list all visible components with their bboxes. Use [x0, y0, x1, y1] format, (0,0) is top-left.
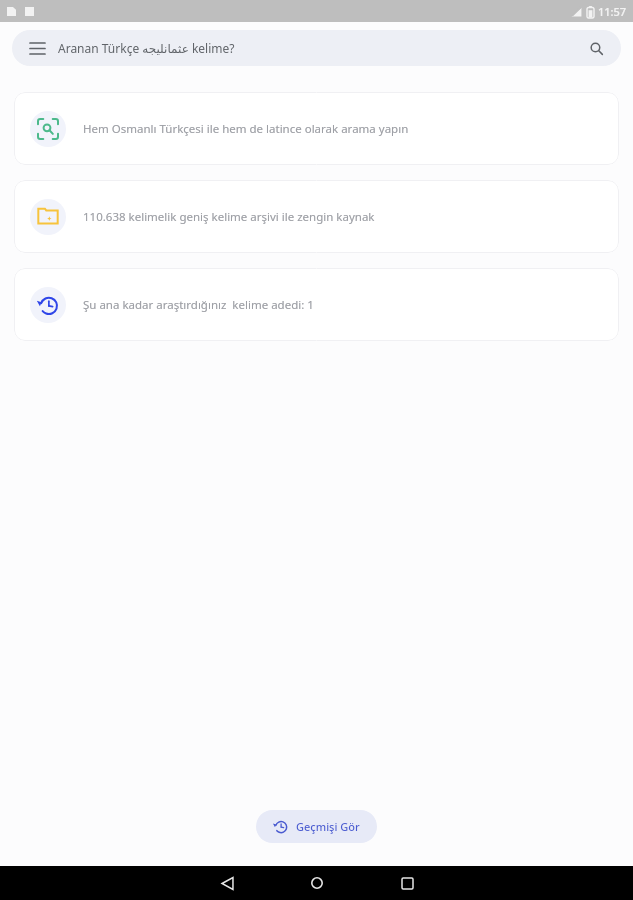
staticText: Şu ana kadar araştırdığınız kelime adedi…: [83, 297, 314, 313]
button[interactable]: Şu ana kadar araştırdığınız kelime adedi…: [14, 268, 619, 341]
button[interactable]: Geçmişi Gör: [256, 810, 377, 843]
button[interactable]: Menu: [12, 30, 621, 66]
staticText: 11:57: [598, 4, 627, 19]
button[interactable]: Back: [203, 866, 251, 900]
staticText: 110.638 kelimelik geniş kelime arşivi il…: [83, 209, 375, 225]
staticText: Hem Osmanlı Türkçesi ile hem de latince …: [83, 121, 409, 137]
button[interactable]: Search: [585, 37, 607, 59]
button[interactable]: 110.638 kelimelik geniş kelime arşivi il…: [14, 180, 619, 253]
button[interactable]: Hem Osmanlı Türkçesi ile hem de latince …: [14, 92, 619, 165]
staticText: Aranan Türkçe عثمانلیجه kelime?: [58, 40, 585, 56]
button[interactable]: Home: [293, 866, 341, 900]
button[interactable]: Menu: [26, 37, 48, 59]
button[interactable]: Recent apps: [383, 866, 431, 900]
staticText: Geçmişi Gör: [296, 819, 360, 834]
